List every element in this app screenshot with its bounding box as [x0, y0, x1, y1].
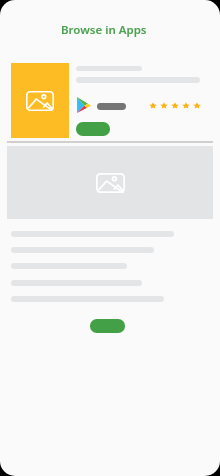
button[interactable]: App artwork: [11, 63, 69, 138]
button[interactable]: Browse in Apps: [44, 22, 164, 38]
button[interactable]: Google Play: [76, 97, 91, 113]
button[interactable]: Media: [7, 146, 213, 219]
staticText: Browse in Apps: [61, 22, 147, 38]
button[interactable]: Install: [76, 122, 110, 136]
button[interactable]: Continue: [90, 319, 125, 333]
